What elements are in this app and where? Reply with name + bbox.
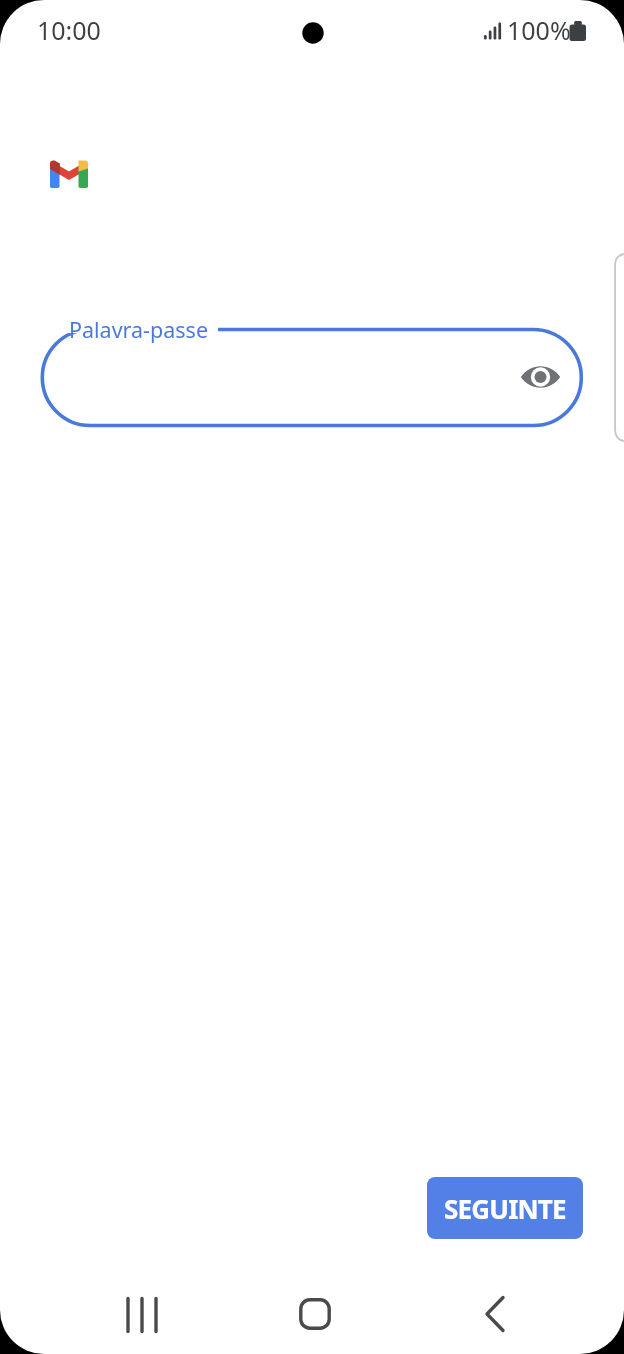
button[interactable] [460,1284,530,1344]
button[interactable]: SEGUINTE [427,1177,583,1239]
button[interactable] [107,1285,177,1345]
button[interactable] [520,363,561,391]
staticText: Palavra-passe [69,315,209,344]
staticText: 100% [507,13,571,47]
staticText: 10:00 [37,13,101,47]
staticText: SEGUINTE [444,1191,566,1226]
button[interactable] [280,1284,350,1344]
